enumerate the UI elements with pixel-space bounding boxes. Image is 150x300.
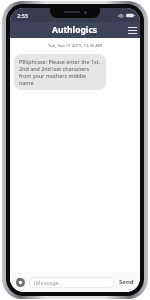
button[interactable]: iMessage xyxy=(29,277,114,288)
staticText: Send xyxy=(119,278,134,286)
button[interactable]: Send xyxy=(117,276,136,288)
staticText: iMessage xyxy=(34,279,59,287)
button[interactable]: Camera xyxy=(14,276,26,288)
button[interactable]: Menu xyxy=(124,22,140,38)
button[interactable]: PINphrase: Please enter the 1st, 2nd and… xyxy=(14,54,106,90)
staticText: Authlogics xyxy=(52,24,98,36)
staticText: PINphrase: Please enter the 1st, 2nd and… xyxy=(19,58,101,86)
staticText: Tue, Sep 17 2019, 12:56 AM xyxy=(10,43,140,49)
staticText: 2:53 xyxy=(17,12,28,19)
